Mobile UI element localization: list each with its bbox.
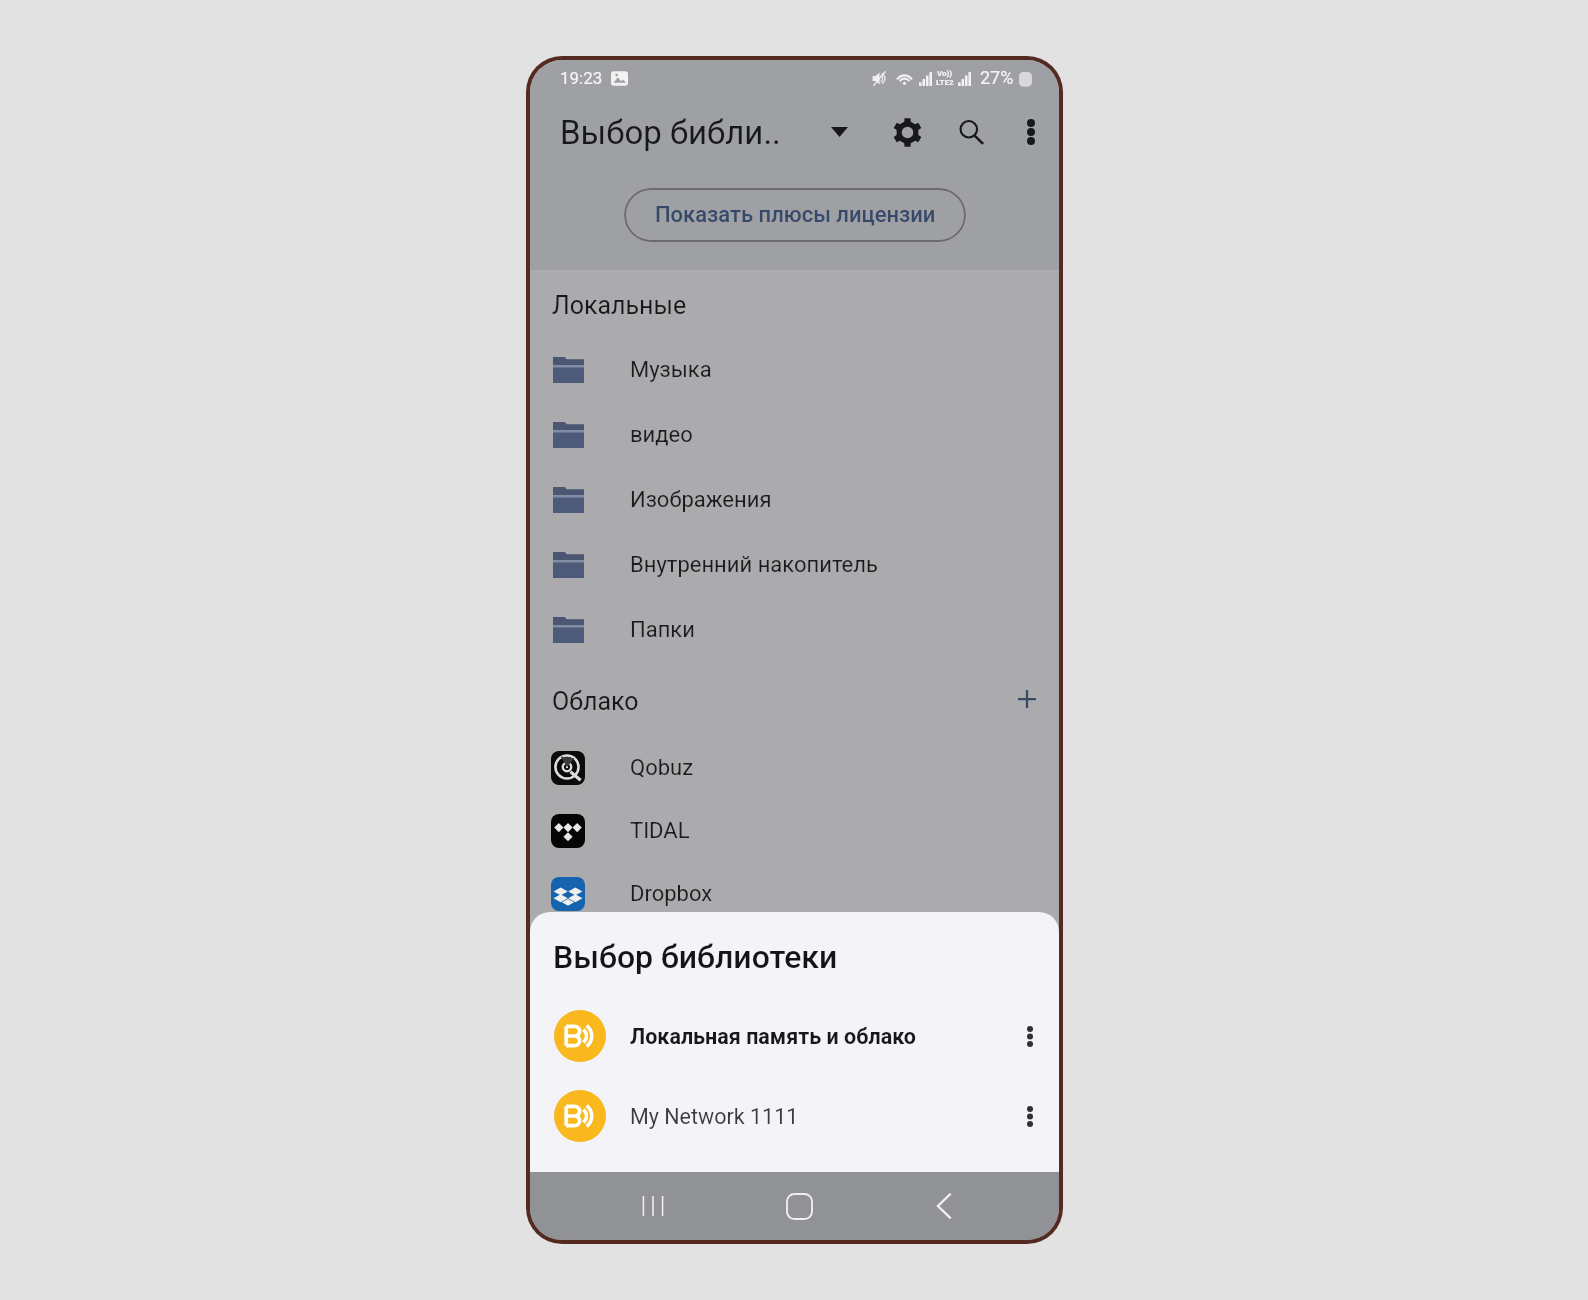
staticText: Музыка — [630, 357, 712, 383]
staticText: Vo)) — [937, 69, 953, 78]
button[interactable]: Внутренний накопитель — [530, 532, 1059, 597]
button[interactable]: Изображения — [530, 467, 1059, 532]
staticText: Показать плюсы лицензии — [655, 202, 936, 228]
button[interactable]: видео — [530, 402, 1059, 467]
staticText: Выбор библиотеки — [553, 938, 838, 976]
button[interactable]: Add cloud — [1007, 679, 1047, 719]
staticText: Облако — [552, 687, 639, 716]
staticText: Локальные — [552, 291, 687, 320]
staticText: Выбор библи.. — [560, 113, 781, 152]
staticText: 19:23 — [560, 68, 603, 88]
button[interactable]: Музыка — [530, 337, 1059, 402]
button[interactable]: Settings — [883, 108, 931, 156]
staticText: Внутренний накопитель — [630, 552, 878, 578]
button[interactable]: Dropdown — [820, 113, 858, 151]
staticText: Qobuz — [630, 755, 694, 781]
button[interactable]: Локальная память и облако — [530, 996, 1059, 1076]
staticText: Локальная память и облако — [630, 1024, 916, 1049]
button[interactable]: Qobuz — [530, 736, 1059, 799]
button[interactable]: Back — [912, 1174, 976, 1238]
button[interactable]: Options — [1011, 1097, 1049, 1135]
button[interactable]: Папки — [530, 597, 1059, 662]
button[interactable]: Home — [767, 1174, 831, 1238]
button[interactable]: TIDAL — [530, 799, 1059, 862]
button[interactable]: More options — [1011, 112, 1051, 152]
staticText: LTE2 — [936, 78, 954, 87]
staticText: видео — [630, 422, 693, 448]
staticText: Изображения — [630, 487, 772, 513]
staticText: Dropbox — [630, 881, 713, 907]
button[interactable]: Search — [949, 110, 993, 154]
staticText: My Network 1111 — [630, 1104, 799, 1129]
button[interactable]: Показать плюсы лицензии — [624, 188, 966, 242]
button[interactable]: Dropbox — [530, 862, 1059, 925]
button[interactable]: My Network 1111 — [530, 1076, 1059, 1156]
staticText: TIDAL — [630, 818, 690, 844]
button[interactable]: Recents — [621, 1174, 685, 1238]
staticText: Папки — [630, 617, 695, 643]
button[interactable]: Options — [1011, 1017, 1049, 1055]
staticText: 27% — [980, 67, 1014, 88]
